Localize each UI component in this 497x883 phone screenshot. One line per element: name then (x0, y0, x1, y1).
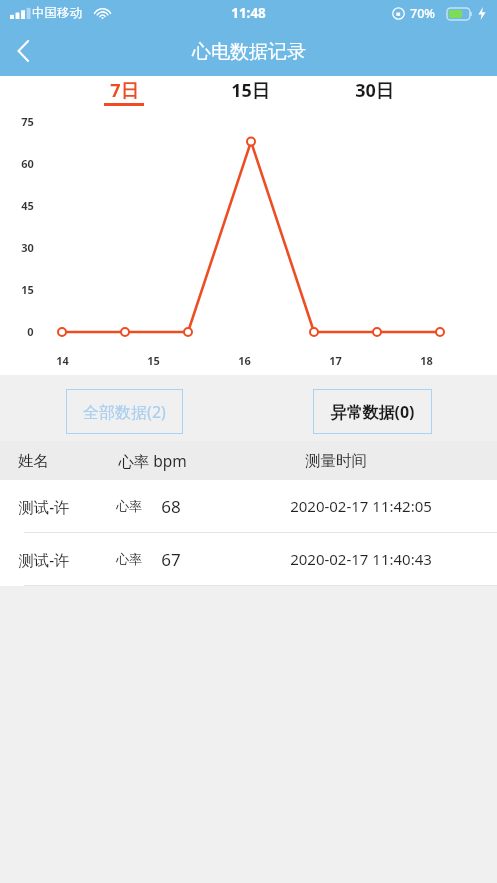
button[interactable]: 15日 (218, 76, 282, 110)
staticText: 异常数据(0) (330, 401, 415, 423)
staticText: 7日 (110, 78, 139, 103)
staticText: 心率 bpm (118, 450, 187, 471)
staticText: 11:48 (231, 4, 266, 22)
button[interactable]: 测试-许 (0, 533, 497, 585)
staticText: 0 (27, 324, 34, 339)
staticText: 心率 (116, 498, 142, 514)
staticText: 17 (329, 353, 342, 368)
button[interactable]: 7日 (96, 76, 152, 110)
button[interactable]: 返回 (0, 26, 46, 76)
staticText: 15日 (231, 78, 270, 103)
button[interactable]: 异常数据(0) (313, 389, 432, 434)
staticText: 45 (21, 198, 34, 213)
staticText: 15 (21, 282, 34, 297)
staticText: 14 (56, 353, 69, 368)
staticText: 15 (147, 353, 160, 368)
button[interactable]: 全部数据(2) (66, 389, 183, 434)
staticText: 67 (161, 548, 181, 571)
staticText: 2020-02-17 11:40:43 (290, 549, 432, 569)
staticText: 心电数据记录 (192, 40, 306, 64)
staticText: 测量时间 (305, 451, 367, 471)
staticText: 75 (21, 114, 34, 129)
staticText: 30 (21, 240, 34, 255)
staticText: 测试-许 (18, 549, 70, 570)
staticText: 姓名 (18, 451, 49, 471)
button[interactable]: 测试-许 (0, 480, 497, 532)
staticText: 2020-02-17 11:42:05 (290, 496, 432, 516)
staticText: 68 (161, 495, 181, 518)
staticText: 30日 (355, 78, 394, 103)
staticText: 测试-许 (18, 496, 70, 517)
staticText: 16 (238, 353, 251, 368)
button[interactable]: 30日 (342, 76, 406, 110)
staticText: 全部数据(2) (83, 401, 166, 423)
staticText: 心率 (116, 551, 142, 567)
staticText: 中国移动 (32, 5, 82, 21)
staticText: 70% (410, 5, 435, 22)
staticText: 18 (420, 353, 433, 368)
staticText: 60 (21, 156, 34, 171)
